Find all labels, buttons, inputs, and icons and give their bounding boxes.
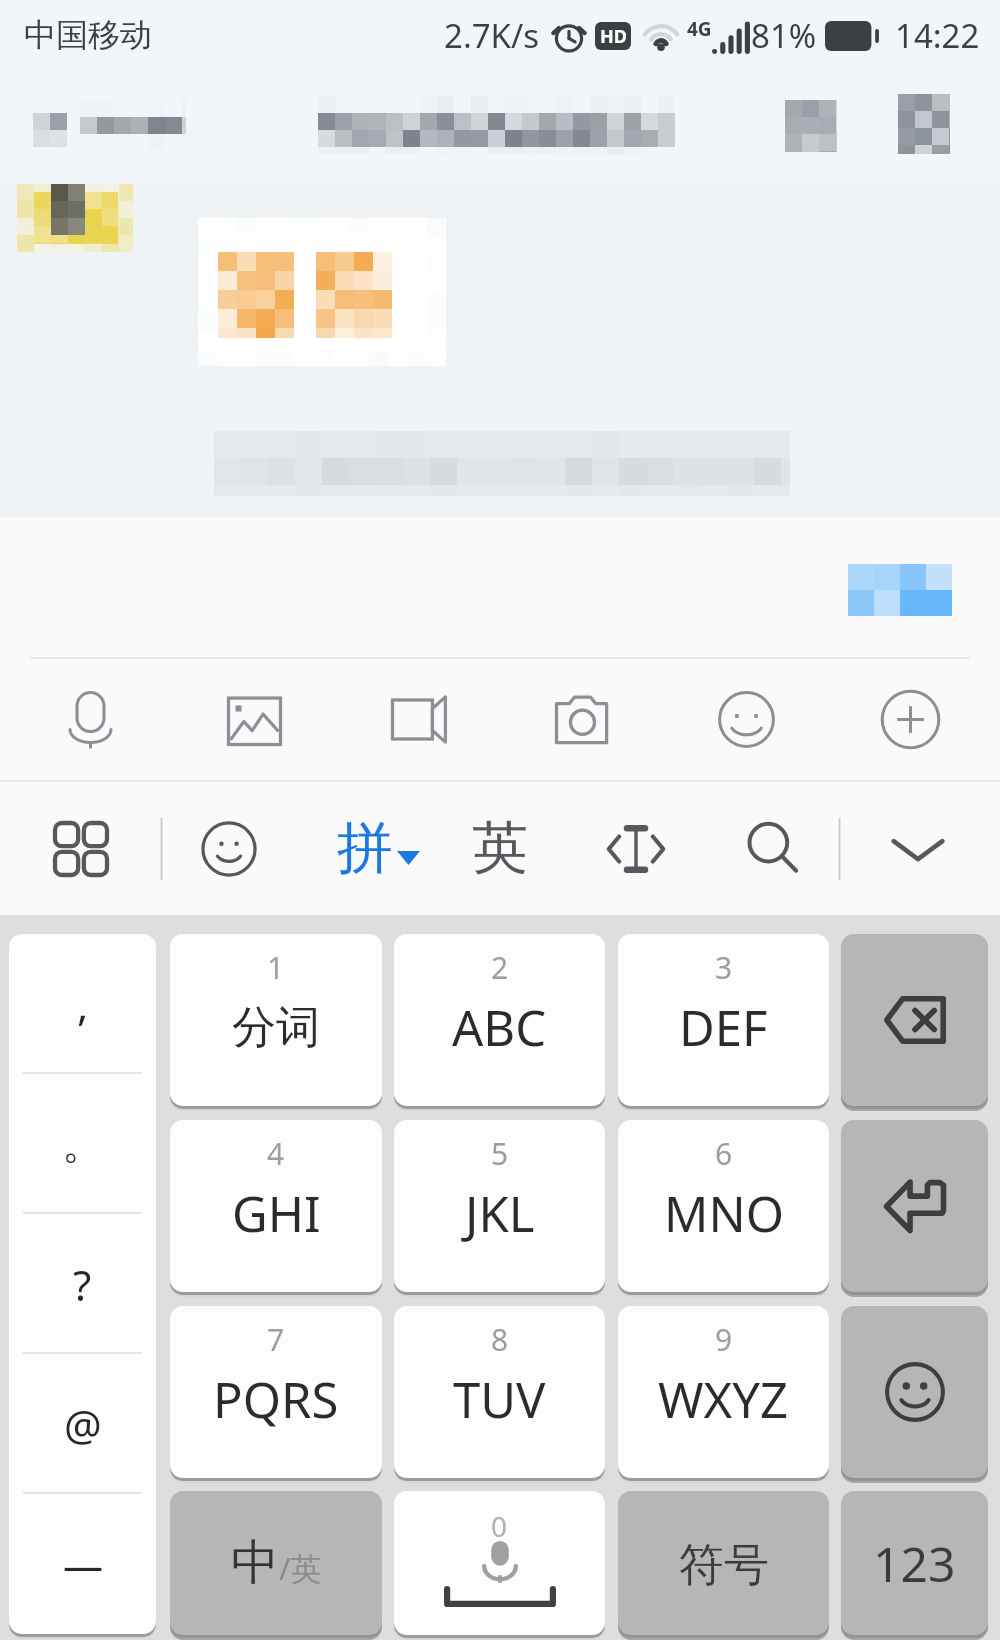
button[interactable]: 5 [394, 1120, 605, 1292]
button[interactable]: Keyboard layouts [33, 782, 129, 915]
button[interactable]: Hide keyboard [868, 782, 968, 915]
button[interactable]: 7 [170, 1306, 382, 1478]
staticText: — [63, 1537, 103, 1591]
staticText: 2 [491, 947, 509, 988]
button[interactable]: 3 [618, 934, 829, 1106]
button[interactable]: 中 [170, 1491, 382, 1635]
button[interactable]: 4 [170, 1120, 382, 1292]
staticText: 5 [491, 1133, 509, 1174]
staticText: 中 [231, 1533, 279, 1593]
button[interactable]: 。 [9, 1074, 156, 1214]
staticText: 123 [873, 1531, 956, 1596]
staticText: , [77, 976, 89, 1033]
staticText: HD [600, 24, 627, 49]
staticText: 8 [491, 1319, 509, 1360]
button[interactable]: 拼 [337, 782, 420, 915]
staticText: 7 [267, 1319, 285, 1360]
staticText: @ [64, 1396, 102, 1453]
button[interactable]: Sticker message [180, 202, 448, 380]
button[interactable]: Space [394, 1491, 605, 1635]
button[interactable]: Video call [359, 658, 477, 781]
staticText: 拼 [337, 813, 393, 884]
button[interactable]: — [9, 1494, 156, 1634]
staticText: 14:22 [895, 13, 980, 58]
staticText: 6 [715, 1133, 733, 1174]
button[interactable]: @ [9, 1354, 156, 1494]
button[interactable]: Photos [195, 658, 313, 781]
staticText: 中国移动 [24, 15, 152, 55]
staticText: 英 [472, 813, 528, 884]
staticText: 1 [267, 947, 285, 988]
button[interactable]: Emoji [181, 782, 277, 915]
button[interactable]: Emoji [841, 1306, 988, 1478]
button[interactable]: 8 [394, 1306, 605, 1478]
button[interactable]: , [9, 934, 156, 1074]
button[interactable]: Backspace [841, 934, 988, 1106]
staticText: 。 [62, 1118, 104, 1171]
staticText: 81% [751, 13, 817, 58]
staticText: 9 [715, 1319, 733, 1360]
button[interactable]: Voice message [31, 658, 149, 781]
staticText: MNO [664, 1180, 784, 1247]
button[interactable]: 英 [452, 782, 548, 915]
button[interactable]: 符号 [618, 1491, 829, 1635]
button[interactable]: 1 [170, 934, 382, 1106]
staticText: GHI [232, 1180, 321, 1247]
button[interactable]: 6 [618, 1120, 829, 1292]
staticText: /英 [279, 1547, 322, 1589]
staticText: 2.7K/s [444, 13, 540, 58]
button[interactable]: 123 [841, 1491, 988, 1635]
button[interactable]: Back [10, 78, 80, 162]
staticText: PQRS [213, 1366, 339, 1433]
button[interactable]: Move cursor [586, 782, 686, 915]
staticText: 3 [715, 947, 733, 988]
staticText: 4G [687, 16, 712, 42]
staticText: WXYZ [658, 1366, 789, 1433]
staticText: 4 [267, 1133, 285, 1174]
staticText: DEF [679, 994, 768, 1061]
staticText: JKL [465, 1180, 535, 1247]
button[interactable]: Camera [523, 658, 641, 781]
button[interactable]: More [851, 658, 969, 781]
staticText: ? [73, 1256, 92, 1313]
button[interactable]: 2 [394, 934, 605, 1106]
button[interactable]: Enter [841, 1120, 988, 1292]
staticText: 0 [491, 1507, 508, 1545]
button[interactable]: ? [9, 1214, 156, 1354]
button[interactable]: More options [880, 78, 968, 162]
button[interactable]: Call [770, 80, 850, 162]
button[interactable]: Avatar [17, 184, 133, 252]
staticText: ABC [452, 994, 547, 1061]
staticText: 分词 [232, 1000, 320, 1055]
button[interactable]: 9 [618, 1306, 829, 1478]
staticText: 符号 [679, 1537, 769, 1594]
staticText: TUV [453, 1366, 546, 1433]
button[interactable]: Emoji [687, 658, 805, 781]
button[interactable]: Search [723, 782, 823, 915]
